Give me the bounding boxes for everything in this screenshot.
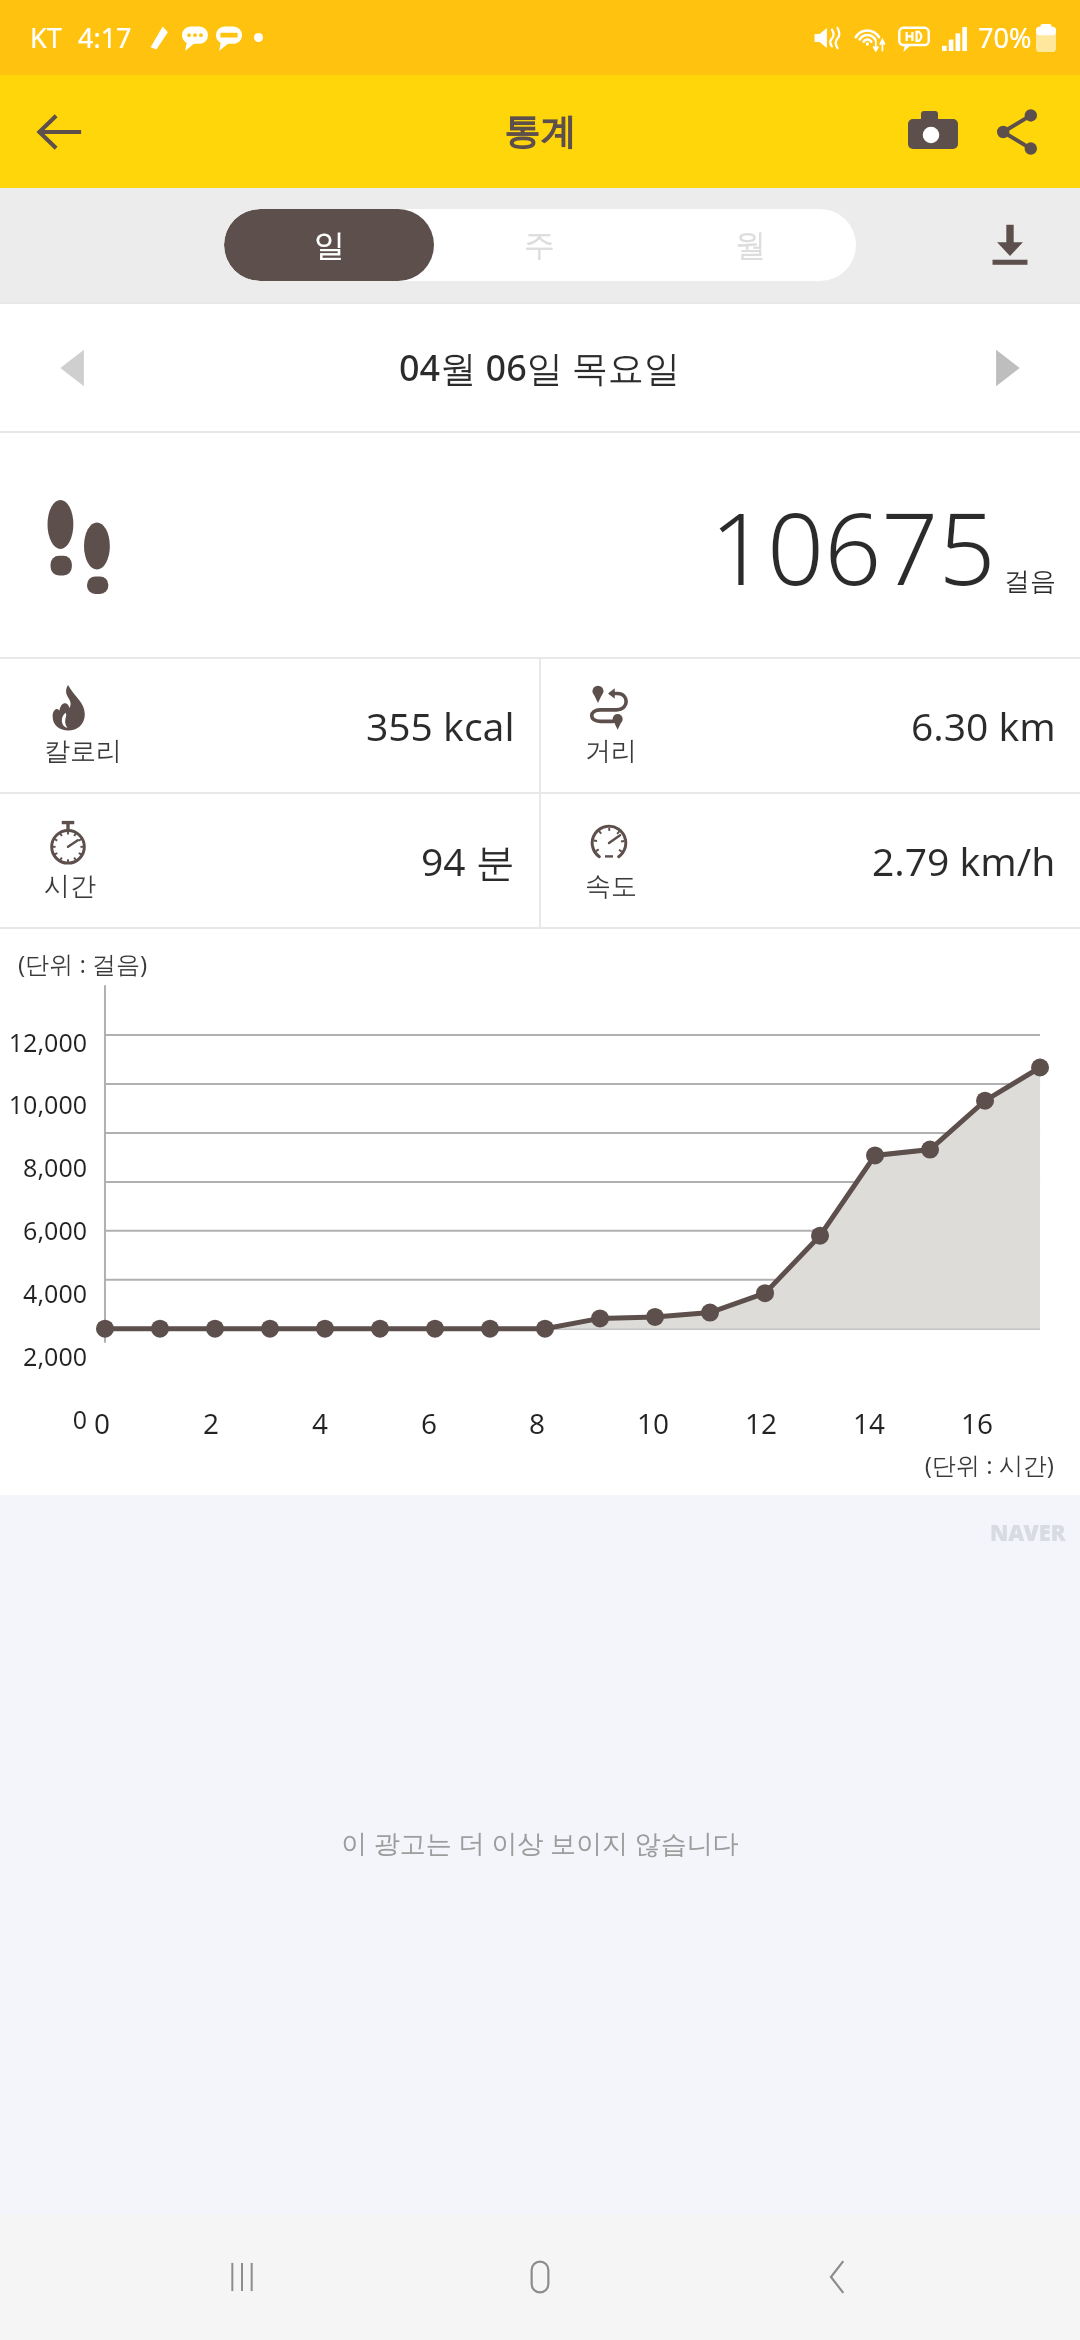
staticText: 칼로리	[44, 735, 122, 768]
staticText: 거리	[585, 735, 637, 768]
staticText: 2,000	[0, 1339, 87, 1373]
button[interactable]: Download	[968, 203, 1052, 287]
staticText: 6	[421, 1404, 438, 1442]
staticText: 6.30 km	[911, 699, 1056, 752]
staticText: (단위 : 걸음)	[18, 947, 148, 980]
staticText: 2	[203, 1404, 220, 1442]
button[interactable]: 거리	[541, 659, 1080, 792]
staticText: 94 분	[421, 834, 515, 887]
staticText: 시간	[44, 870, 96, 903]
staticText: 12	[745, 1404, 778, 1442]
staticText: 걸음	[1004, 565, 1056, 598]
button[interactable]: Back	[20, 92, 100, 172]
staticText: NAVER	[990, 1517, 1066, 1547]
button[interactable]: 칼로리	[0, 659, 539, 792]
staticText: 10,000	[0, 1087, 87, 1121]
staticText: 주	[524, 226, 555, 265]
staticText: 속도	[585, 870, 637, 903]
staticText: 8,000	[0, 1150, 87, 1184]
staticText: 4	[312, 1404, 329, 1442]
staticText: 4,000	[0, 1276, 87, 1310]
button[interactable]: Back	[782, 2221, 894, 2333]
button[interactable]: Home	[484, 2221, 596, 2333]
staticText: 0	[0, 1402, 87, 1436]
button[interactable]: Next day	[960, 322, 1052, 414]
button[interactable]: 시간	[0, 794, 539, 927]
button[interactable]: Recents	[186, 2221, 298, 2333]
staticText: 2.79 km/h	[872, 834, 1056, 887]
button[interactable]: Camera	[894, 93, 972, 171]
button[interactable]: 속도	[541, 794, 1080, 927]
staticText: 8	[529, 1404, 546, 1442]
staticText: 10675	[710, 478, 996, 614]
staticText: (단위 : 시간)	[0, 1448, 1054, 1481]
staticText: 월	[735, 226, 766, 265]
staticText: 04월 06일 목요일	[399, 343, 681, 392]
staticText: 6,000	[0, 1213, 87, 1247]
staticText: 12,000	[0, 1025, 87, 1059]
staticText: 10	[637, 1404, 670, 1442]
staticText: 이 광고는 더 이상 보이지 않습니다	[341, 1825, 739, 1861]
staticText: 0	[94, 1404, 111, 1442]
staticText: 14	[853, 1404, 886, 1442]
staticText: 4:17	[78, 19, 132, 56]
button[interactable]: 주	[434, 209, 645, 281]
button[interactable]: Share	[978, 93, 1056, 171]
button[interactable]: 월	[645, 209, 856, 281]
button[interactable]: Previous day	[28, 322, 120, 414]
button[interactable]: 일	[224, 209, 434, 281]
staticText: 통계	[504, 109, 576, 154]
staticText: 355 kcal	[366, 699, 515, 752]
staticText: 일	[314, 226, 345, 265]
staticText: KT	[30, 19, 62, 56]
staticText: 70%	[978, 19, 1032, 56]
staticText: 16	[961, 1404, 994, 1442]
